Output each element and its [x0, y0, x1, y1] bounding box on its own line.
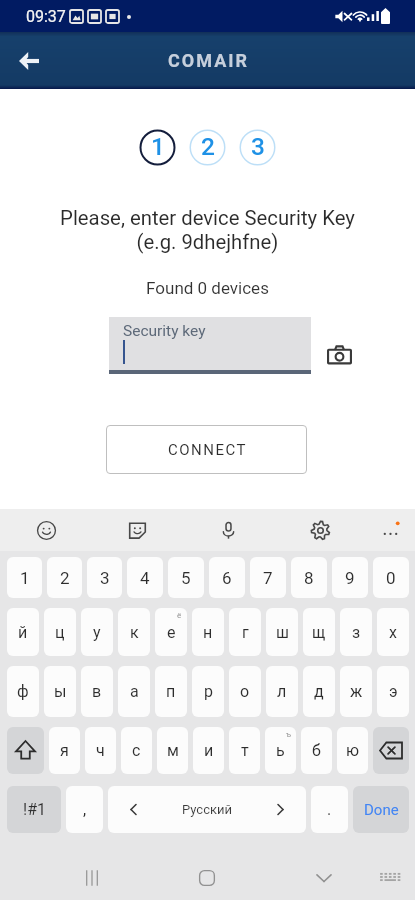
button[interactable]: г	[229, 608, 261, 656]
button[interactable]: Hide keyboard	[373, 861, 406, 894]
button[interactable]: Stickers	[119, 512, 155, 548]
button[interactable]: !#1	[7, 786, 61, 833]
staticText: CONNECT	[168, 441, 248, 459]
staticText: г	[242, 623, 249, 642]
button[interactable]: й	[7, 608, 39, 656]
staticText: 1	[151, 132, 165, 161]
button[interactable]: 3	[239, 129, 276, 166]
staticText: 4	[140, 568, 150, 588]
button[interactable]: ж	[340, 666, 372, 717]
staticText: Found 0 devices	[0, 278, 415, 298]
staticText: 3	[251, 132, 265, 161]
button[interactable]: б	[301, 727, 332, 774]
button[interactable]: 6	[209, 557, 245, 598]
button[interactable]: 2	[189, 129, 226, 166]
button[interactable]: п	[155, 666, 187, 717]
button[interactable]: э	[377, 666, 409, 717]
button[interactable]: р	[192, 666, 224, 717]
staticText: ф	[17, 682, 29, 701]
button[interactable]: а	[118, 666, 150, 717]
staticText: ч	[96, 741, 105, 760]
button[interactable]: щ	[303, 608, 335, 656]
button[interactable]: 1	[7, 557, 42, 598]
button[interactable]: у	[81, 608, 113, 656]
button[interactable]: Back	[7, 39, 51, 83]
button[interactable]: с	[121, 727, 152, 774]
button[interactable]: Done	[353, 786, 409, 833]
staticText: !#1	[23, 800, 46, 819]
button[interactable]: т	[229, 727, 260, 774]
button[interactable]	[7, 727, 44, 774]
staticText: к	[130, 623, 139, 642]
button[interactable]: м	[157, 727, 188, 774]
button[interactable]: 8	[291, 557, 327, 598]
button[interactable]: Русский	[108, 786, 306, 833]
button[interactable]: и	[193, 727, 224, 774]
button[interactable]: х	[377, 608, 409, 656]
staticText: 8	[304, 568, 314, 588]
button[interactable]: ц	[44, 608, 76, 656]
button[interactable]: 4	[127, 557, 163, 598]
button[interactable]: Recent apps	[75, 861, 108, 894]
staticText: 0	[386, 568, 396, 588]
staticText: ъ	[286, 730, 291, 739]
staticText: 2	[60, 568, 70, 588]
button[interactable]: Voice input	[210, 512, 246, 548]
staticText: 3	[100, 568, 110, 588]
button[interactable]: в	[81, 666, 113, 717]
button[interactable]: л	[266, 666, 298, 717]
staticText: Please, enter device Security Key (e.g. …	[0, 206, 415, 254]
button[interactable]: ф	[7, 666, 39, 717]
staticText: в	[92, 682, 102, 701]
button[interactable]: 2	[47, 557, 82, 598]
staticText: 2	[201, 132, 215, 161]
staticText: Русский	[182, 802, 233, 817]
button[interactable]: ш	[266, 608, 298, 656]
button[interactable]: д	[303, 666, 335, 717]
staticText: о	[240, 682, 250, 701]
button[interactable]	[373, 727, 409, 774]
button[interactable]: 9	[332, 557, 368, 598]
button[interactable]: 7	[250, 557, 286, 598]
staticText: .	[327, 800, 332, 819]
staticText: р	[204, 682, 213, 701]
button[interactable]: Emoji	[28, 512, 64, 548]
staticText: ю	[346, 741, 360, 760]
button[interactable]: 5	[168, 557, 204, 598]
button[interactable]: CONNECT	[106, 425, 307, 474]
staticText: х	[389, 623, 397, 642]
staticText: д	[314, 682, 324, 701]
button[interactable]: к	[118, 608, 150, 656]
staticText: ц	[55, 623, 65, 642]
button[interactable]: Back	[307, 861, 340, 894]
staticText: з	[352, 623, 361, 642]
button[interactable]: о	[229, 666, 261, 717]
button[interactable]: н	[192, 608, 224, 656]
staticText: у	[93, 623, 101, 642]
staticText: 7	[263, 568, 273, 588]
button[interactable]: ю	[337, 727, 368, 774]
button[interactable]: ч	[85, 727, 116, 774]
button[interactable]: е	[155, 608, 187, 656]
button[interactable]: Scan code with camera	[321, 336, 357, 372]
staticText: ш	[276, 623, 289, 642]
staticText: 6	[222, 568, 232, 588]
staticText: ь	[276, 741, 285, 760]
button[interactable]: ь	[265, 727, 296, 774]
button[interactable]: Keyboard settings	[302, 512, 338, 548]
button[interactable]: Home	[190, 861, 223, 894]
button[interactable]: ,	[66, 786, 103, 833]
staticText: 09:37	[26, 7, 66, 26]
button[interactable]: More options	[372, 512, 408, 548]
button[interactable]: ы	[44, 666, 76, 717]
button[interactable]: 3	[87, 557, 122, 598]
button[interactable]: з	[340, 608, 372, 656]
button[interactable]: Security key	[109, 317, 311, 374]
staticText: ,	[83, 800, 87, 819]
button[interactable]: 0	[373, 557, 409, 598]
staticText: б	[312, 741, 321, 760]
button[interactable]: .	[311, 786, 348, 833]
staticText: ё	[177, 611, 182, 620]
button[interactable]: я	[49, 727, 80, 774]
button[interactable]: 1	[139, 129, 176, 166]
